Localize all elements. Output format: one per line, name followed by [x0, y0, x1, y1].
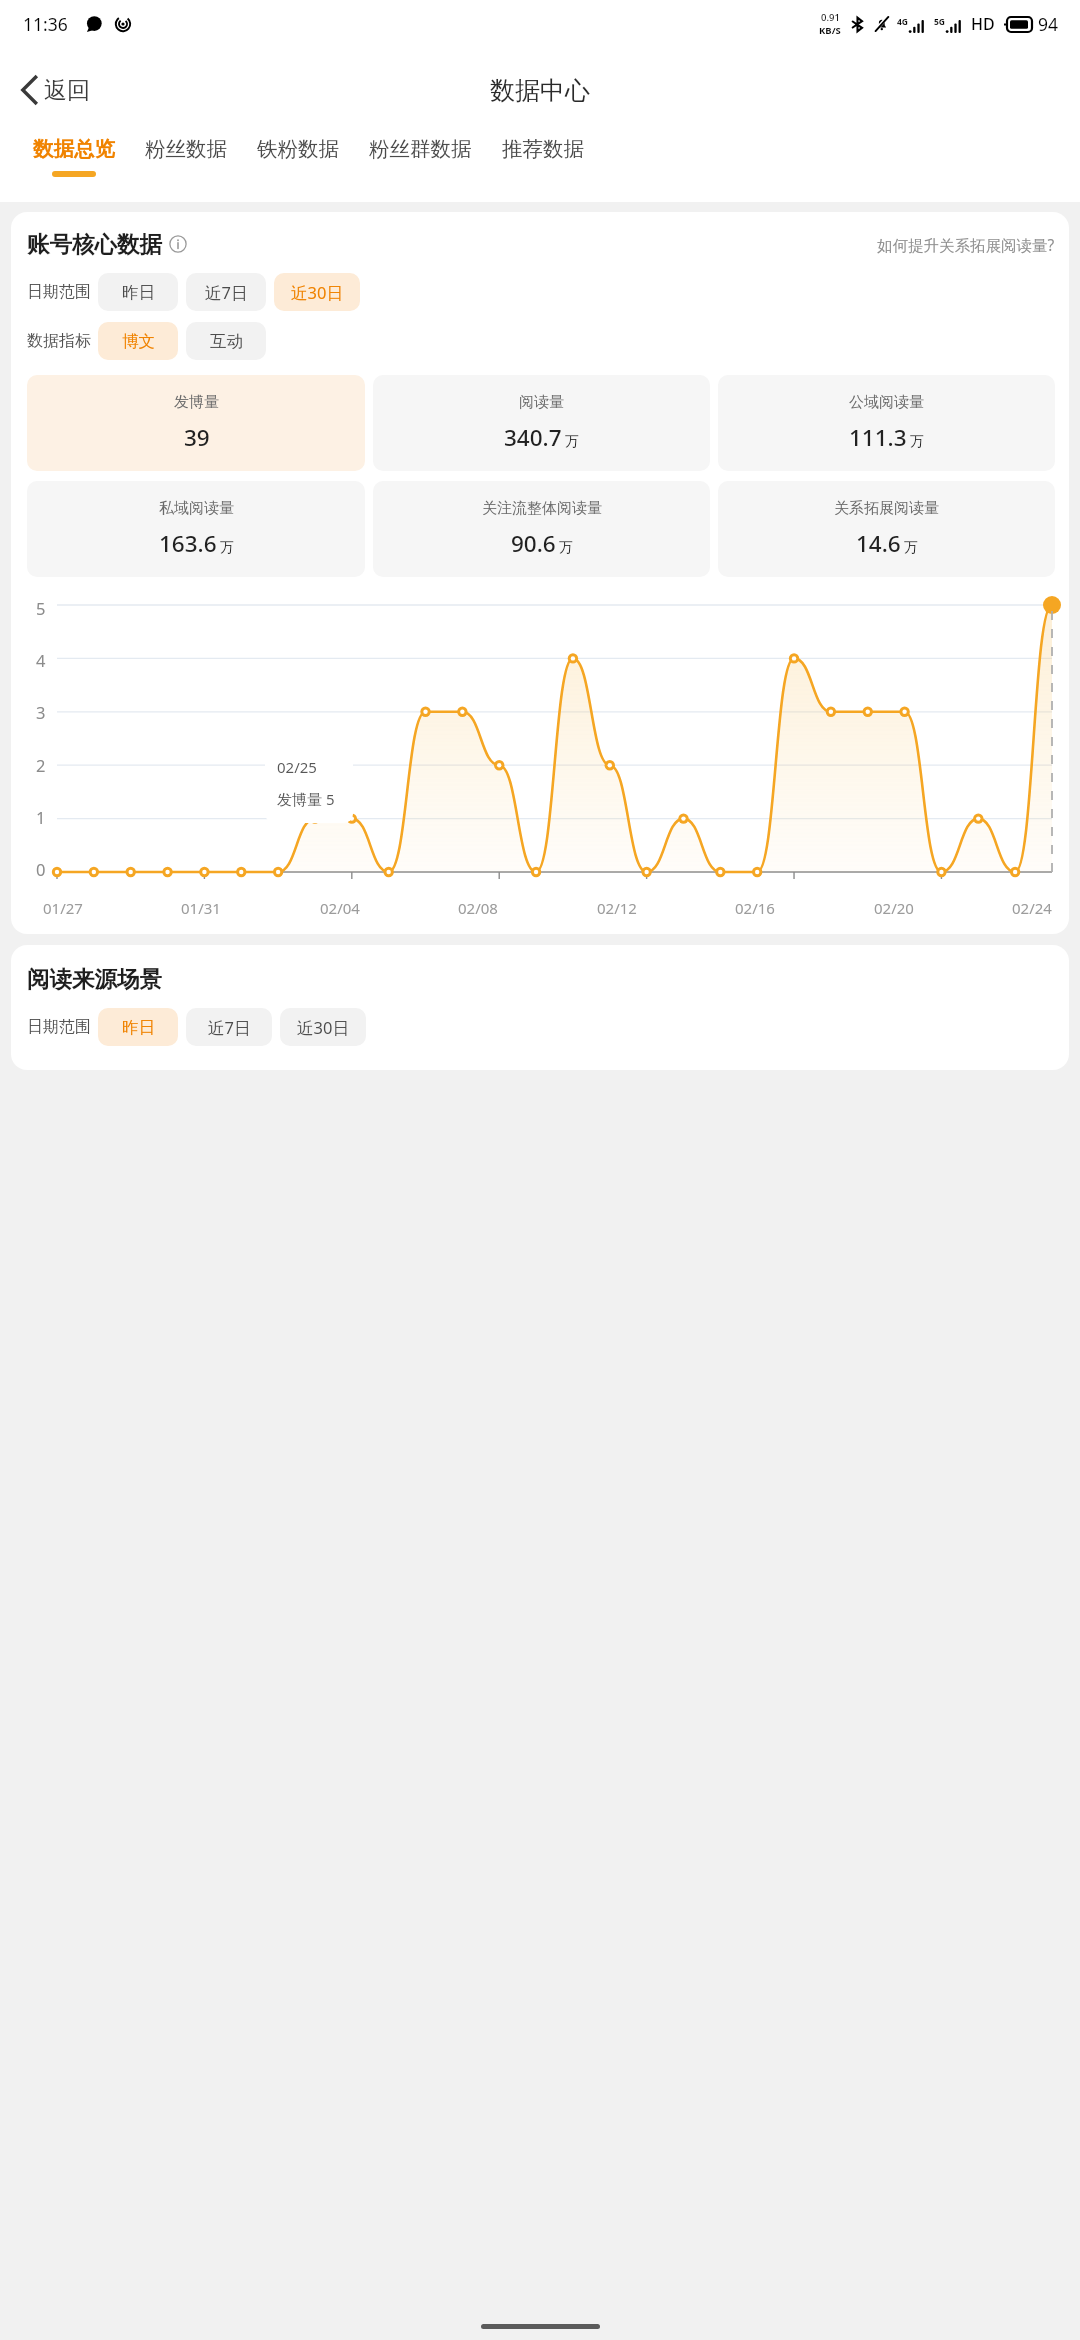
button[interactable]: 数据总览	[18, 132, 130, 177]
button[interactable]: 发博量	[27, 375, 365, 471]
staticText: 昨日	[122, 1017, 155, 1038]
button[interactable]: 近7日	[186, 273, 266, 311]
staticText: 日期范围	[27, 1017, 91, 1037]
staticText: 14.6	[856, 528, 901, 559]
staticText: 0	[36, 858, 46, 880]
staticText: 万	[559, 539, 573, 557]
button[interactable]: 昨日	[98, 1008, 178, 1046]
staticText: HD	[971, 13, 995, 35]
button[interactable]: 粉丝群数据	[354, 132, 487, 171]
staticText: 3	[36, 701, 46, 723]
staticText: 02/24	[1012, 898, 1052, 918]
staticText: 340.7	[504, 422, 562, 453]
staticText: 关注流整体阅读量	[482, 499, 602, 518]
button[interactable]: 关注流整体阅读量	[373, 481, 710, 577]
button[interactable]: 铁粉数据	[242, 132, 354, 171]
button[interactable]: 互动	[186, 322, 266, 360]
button[interactable]: 返回	[0, 64, 108, 116]
button[interactable]: 说明	[169, 235, 187, 253]
staticText: 数据中心	[490, 75, 590, 106]
staticText: 粉丝群数据	[369, 136, 472, 162]
staticText: 互动	[210, 331, 243, 352]
staticText: 111.3	[849, 422, 907, 453]
staticText: 94	[1038, 12, 1059, 36]
staticText: 近7日	[205, 281, 248, 304]
staticText: 私域阅读量	[159, 499, 234, 518]
button[interactable]: 近7日	[186, 1008, 272, 1046]
staticText: 近7日	[208, 1016, 251, 1039]
staticText: 粉丝数据	[145, 136, 227, 162]
staticText: 0.91	[821, 11, 840, 24]
staticText: 发博量	[174, 393, 219, 412]
staticText: 5G	[934, 16, 946, 28]
staticText: 阅读量	[519, 393, 564, 412]
staticText: 返回	[44, 76, 90, 105]
button[interactable]: 私域阅读量	[27, 481, 365, 577]
staticText: 万	[565, 433, 579, 451]
staticText: 推荐数据	[502, 136, 584, 162]
staticText: 数据指标	[27, 331, 91, 351]
staticText: 90.6	[511, 528, 556, 559]
staticText: 公域阅读量	[849, 393, 924, 412]
staticText: 如何提升关系拓展阅读量?	[877, 234, 1055, 255]
button[interactable]: 关系拓展阅读量	[718, 481, 1055, 577]
staticText: 163.6	[159, 528, 217, 559]
staticText: 11:36	[23, 12, 68, 36]
staticText: 02/04	[320, 898, 360, 918]
staticText: 02/16	[735, 898, 775, 918]
staticText: 01/27	[43, 898, 83, 918]
staticText: 万	[220, 539, 234, 557]
staticText: 数据总览	[33, 136, 115, 162]
staticText: 1	[36, 806, 46, 828]
staticText: 02/20	[874, 898, 914, 918]
staticText: 4G	[897, 16, 909, 28]
button[interactable]: 推荐数据	[487, 132, 599, 171]
staticText: 阅读来源场景	[27, 965, 162, 993]
button[interactable]: 如何提升关系拓展阅读量?	[877, 234, 1055, 255]
staticText: 01/31	[181, 898, 221, 918]
staticText: 万	[910, 433, 924, 451]
staticText: 账号核心数据	[27, 230, 162, 258]
staticText: 近30日	[297, 1016, 349, 1039]
staticText: 关系拓展阅读量	[834, 499, 939, 518]
staticText: 02/25	[277, 757, 317, 777]
button[interactable]: 近30日	[274, 273, 360, 311]
staticText: 2	[36, 754, 46, 776]
button[interactable]: 昨日	[98, 273, 178, 311]
staticText: 铁粉数据	[257, 136, 339, 162]
staticText: 昨日	[122, 282, 155, 303]
staticText: 发博量 5	[277, 789, 335, 809]
staticText: 5	[36, 597, 46, 619]
staticText: 39	[184, 422, 210, 453]
staticText: 02/12	[597, 898, 637, 918]
button[interactable]: 公域阅读量	[718, 375, 1055, 471]
staticText: KB/S	[819, 24, 841, 37]
button[interactable]: 阅读量	[373, 375, 710, 471]
button[interactable]: 近30日	[280, 1008, 366, 1046]
button[interactable]: 粉丝数据	[130, 132, 242, 171]
staticText: 万	[904, 539, 918, 557]
button[interactable]: 博文	[98, 322, 178, 360]
staticText: 4	[36, 649, 46, 671]
staticText: 日期范围	[27, 282, 91, 302]
staticText: 博文	[122, 331, 155, 352]
staticText: 02/08	[458, 898, 498, 918]
staticText: 近30日	[291, 281, 343, 304]
